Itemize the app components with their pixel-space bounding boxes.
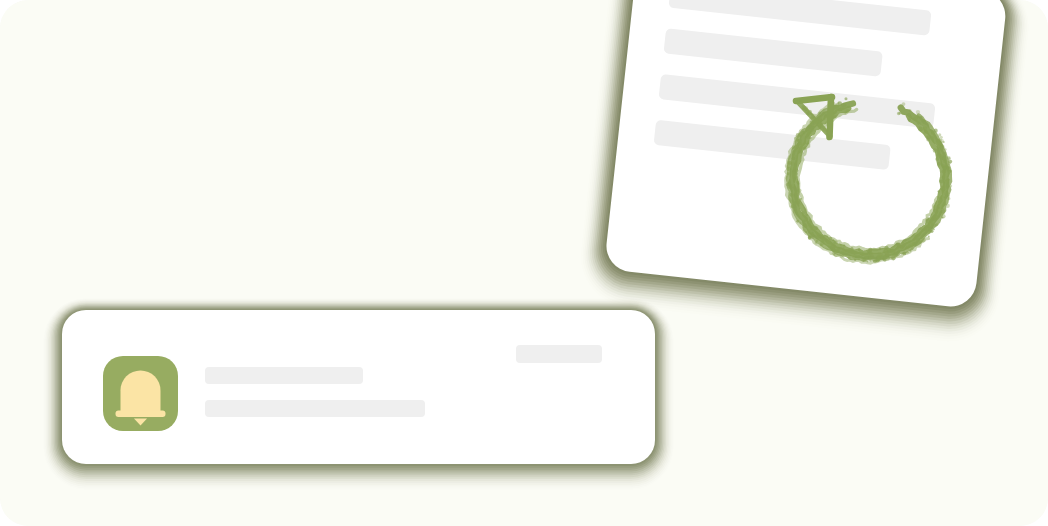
button[interactable]: Refresh [0, 0, 1048, 526]
button[interactable] [0, 0, 1048, 526]
